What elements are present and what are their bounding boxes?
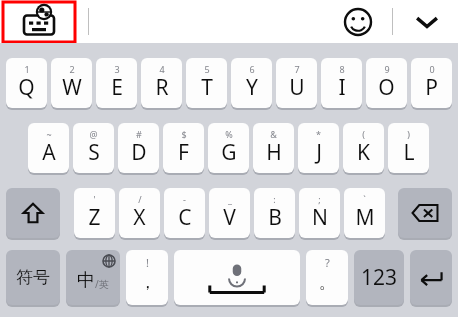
staticText: V: [223, 203, 236, 232]
button[interactable]: Space: [174, 250, 300, 305]
staticText: D: [131, 138, 147, 167]
button[interactable]: 3: [96, 58, 137, 108]
button[interactable]: ~: [28, 123, 69, 173]
staticText: E: [111, 73, 123, 102]
button[interactable]: *: [298, 123, 339, 173]
staticText: ~: [46, 128, 52, 140]
button[interactable]: 9: [366, 58, 407, 108]
staticText: T: [201, 73, 213, 102]
staticText: O: [378, 73, 395, 102]
staticText: X: [133, 203, 146, 232]
button[interactable]: 5: [186, 58, 227, 108]
button[interactable]: ): [388, 123, 429, 173]
staticText: 6: [249, 63, 255, 75]
staticText: @: [89, 128, 98, 140]
button[interactable]: 6: [231, 58, 272, 108]
button[interactable]: 4: [141, 58, 182, 108]
staticText: `: [363, 193, 366, 205]
staticText: 2: [69, 63, 75, 75]
button[interactable]: &: [253, 123, 294, 173]
button[interactable]: _: [209, 188, 250, 238]
button[interactable]: /: [119, 188, 160, 238]
staticText: ): [407, 128, 410, 140]
staticText: F: [178, 138, 189, 167]
staticText: *: [316, 128, 321, 140]
staticText: I: [338, 73, 346, 102]
button[interactable]: ;: [299, 188, 340, 238]
staticText: 3: [114, 63, 120, 75]
button[interactable]: 7: [276, 58, 317, 108]
button[interactable]: Shift: [6, 188, 60, 238]
staticText: 符号: [16, 267, 50, 288]
staticText: /英: [95, 277, 109, 291]
staticText: ;: [318, 193, 321, 205]
staticText: 123: [361, 263, 398, 292]
staticText: 。: [319, 272, 336, 293]
staticText: 9: [384, 63, 390, 75]
button[interactable]: 123: [354, 250, 404, 305]
staticText: :: [273, 193, 276, 205]
staticText: !: [146, 255, 149, 270]
button[interactable]: !: [126, 250, 168, 305]
button[interactable]: ': [74, 188, 115, 238]
staticText: ': [93, 193, 96, 205]
button[interactable]: 2: [51, 58, 92, 108]
button[interactable]: ?: [306, 250, 348, 305]
staticText: %: [225, 128, 233, 140]
staticText: P: [425, 73, 438, 102]
button[interactable]: Backspace: [398, 188, 452, 238]
staticText: &: [270, 128, 277, 140]
staticText: -: [183, 193, 186, 205]
staticText: K: [357, 138, 370, 167]
button[interactable]: 0: [411, 58, 452, 108]
staticText: N: [312, 203, 328, 232]
button[interactable]: `: [344, 188, 385, 238]
staticText: ?: [325, 255, 330, 270]
staticText: G: [221, 138, 237, 167]
button[interactable]: %: [208, 123, 249, 173]
button[interactable]: Enter: [410, 250, 452, 305]
staticText: ，: [139, 272, 156, 293]
staticText: Y: [246, 73, 258, 102]
staticText: $: [181, 128, 187, 140]
button[interactable]: @: [73, 123, 114, 173]
staticText: B: [268, 203, 282, 232]
staticText: W: [62, 73, 82, 102]
staticText: C: [178, 203, 192, 232]
button[interactable]: -: [164, 188, 205, 238]
staticText: #: [136, 128, 142, 140]
staticText: Q: [18, 73, 35, 102]
staticText: M: [355, 203, 375, 232]
staticText: 中: [77, 269, 95, 292]
staticText: L: [403, 138, 415, 167]
staticText: /: [138, 193, 142, 205]
button[interactable]: 符号: [6, 250, 60, 305]
button[interactable]: Hide keyboard: [408, 5, 446, 39]
staticText: 8: [339, 63, 345, 75]
button[interactable]: Switch keyboard: [3, 2, 75, 42]
staticText: U: [289, 73, 305, 102]
staticText: 7: [294, 63, 300, 75]
staticText: A: [42, 138, 56, 167]
staticText: _: [228, 193, 232, 205]
button[interactable]: (: [343, 123, 384, 173]
staticText: 1: [24, 63, 30, 75]
staticText: 5: [204, 63, 210, 75]
button[interactable]: :: [254, 188, 295, 238]
button[interactable]: #: [118, 123, 159, 173]
staticText: 4: [159, 63, 165, 75]
staticText: J: [316, 138, 322, 167]
staticText: Z: [88, 203, 101, 232]
button[interactable]: $: [163, 123, 204, 173]
staticText: 0: [429, 63, 435, 75]
staticText: (: [362, 128, 365, 140]
staticText: S: [88, 138, 100, 167]
staticText: H: [266, 138, 282, 167]
button[interactable]: Emoji: [340, 5, 376, 39]
button[interactable]: 1: [6, 58, 47, 108]
button[interactable]: 中: [66, 250, 120, 305]
button[interactable]: 8: [321, 58, 362, 108]
staticText: R: [155, 73, 169, 102]
